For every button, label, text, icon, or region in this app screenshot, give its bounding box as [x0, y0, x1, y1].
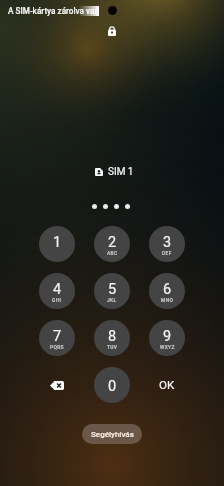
staticText: Segélyhívás: [91, 430, 134, 439]
staticText: ABC: [107, 250, 118, 256]
staticText: WXYZ: [160, 344, 175, 350]
staticText: SIM 1: [108, 166, 134, 178]
button[interactable]: 9: [149, 320, 185, 356]
staticText: 6: [163, 281, 172, 298]
staticText: DEF: [162, 250, 172, 256]
staticText: MNO: [161, 297, 174, 303]
staticText: 9: [163, 328, 172, 345]
staticText: 4: [53, 281, 62, 298]
staticText: TUV: [107, 344, 118, 350]
button[interactable]: 4: [39, 273, 75, 309]
staticText: 0: [108, 378, 117, 395]
button[interactable]: OK: [147, 367, 187, 403]
staticText: JKL: [107, 297, 117, 303]
button[interactable]: Segélyhívás: [82, 424, 142, 444]
staticText: 3: [163, 234, 172, 251]
staticText: 2: [108, 234, 117, 251]
staticText: OK: [159, 378, 175, 392]
button[interactable]: 6: [149, 273, 185, 309]
button[interactable]: 5: [94, 273, 130, 309]
button[interactable]: 8: [94, 320, 130, 356]
staticText: 5: [108, 281, 117, 298]
staticText: 8: [108, 328, 117, 345]
button[interactable]: 2: [94, 226, 130, 262]
staticText: 1: [53, 234, 62, 251]
button[interactable]: 1: [39, 226, 75, 262]
staticText: A SIM-kártya zárolva van: [8, 6, 99, 16]
staticText: GHI: [52, 297, 62, 303]
button[interactable]: 7: [39, 320, 75, 356]
button[interactable]: 0: [94, 367, 130, 403]
button[interactable]: 3: [149, 226, 185, 262]
staticText: 7: [53, 328, 62, 345]
button[interactable]: Backspace: [37, 367, 77, 403]
staticText: PQRS: [50, 344, 64, 350]
